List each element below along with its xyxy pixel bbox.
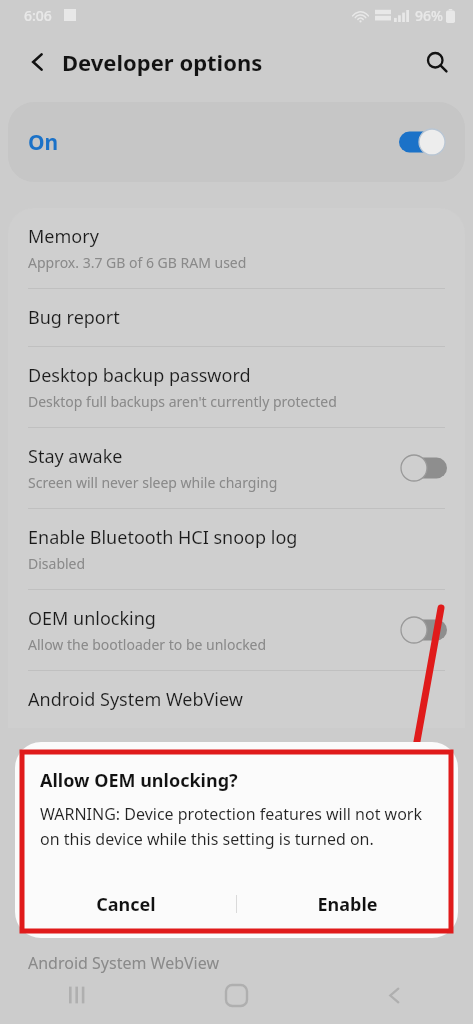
staticText: 6:06 bbox=[24, 6, 52, 25]
staticText: Android System WebView bbox=[28, 952, 220, 974]
button[interactable]: Desktop backup password bbox=[8, 347, 465, 427]
button[interactable]: Bug report bbox=[8, 289, 465, 346]
staticText: On bbox=[28, 128, 59, 157]
staticText: Cancel bbox=[96, 892, 156, 917]
button[interactable]: Cancel bbox=[15, 876, 236, 932]
button[interactable]: Enable bbox=[237, 876, 458, 932]
button[interactable]: Enable Bluetooth HCI snoop log bbox=[8, 509, 465, 589]
staticText: Memory bbox=[28, 224, 99, 249]
staticText: Disabled bbox=[28, 554, 86, 573]
button[interactable]: Recents bbox=[0, 966, 157, 1024]
button[interactable]: Memory bbox=[8, 208, 465, 288]
staticText: Desktop backup password bbox=[28, 363, 251, 388]
button[interactable]: Stay awake bbox=[8, 428, 465, 508]
staticText: Allow OEM unlocking? bbox=[40, 768, 238, 793]
button[interactable]: Navigate up bbox=[14, 38, 62, 86]
staticText: Developer options bbox=[62, 47, 263, 77]
staticText: Allow the bootloader to be unlocked bbox=[28, 635, 267, 654]
staticText: Enable bbox=[317, 892, 378, 917]
staticText: Approx. 3.7 GB of 6 GB RAM used bbox=[28, 253, 247, 272]
button[interactable]: On bbox=[8, 102, 465, 182]
staticText: 96% bbox=[415, 6, 443, 25]
staticText: WARNING: Device protection features will… bbox=[40, 803, 440, 849]
staticText: Bug report bbox=[28, 305, 120, 330]
button[interactable]: OEM unlocking bbox=[8, 590, 465, 670]
button[interactable]: Home bbox=[157, 966, 315, 1024]
staticText: Enable Bluetooth HCI snoop log bbox=[28, 525, 298, 550]
staticText: Desktop full backups aren't currently pr… bbox=[28, 392, 337, 411]
staticText: Stay awake bbox=[28, 444, 123, 469]
button[interactable]: Search bbox=[413, 38, 461, 86]
staticText: Screen will never sleep while charging bbox=[28, 473, 278, 492]
button[interactable]: Android System WebView bbox=[8, 671, 465, 728]
staticText: Android System WebView bbox=[28, 687, 243, 712]
staticText: OEM unlocking bbox=[28, 606, 156, 631]
